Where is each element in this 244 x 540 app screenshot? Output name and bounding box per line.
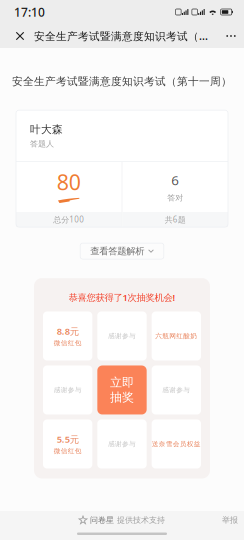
button[interactable]: 送奈雪会员权益 xyxy=(152,419,201,468)
staticText: 提供技术支持 xyxy=(117,515,165,525)
button[interactable]: 5.5元 xyxy=(43,419,92,468)
button[interactable]: 感谢参与 xyxy=(152,365,201,414)
staticText: 微信红包 xyxy=(54,339,82,347)
staticText: 抽奖 xyxy=(110,390,134,405)
staticText: 答题人 xyxy=(30,139,54,149)
button[interactable]: 感谢参与 xyxy=(97,311,147,360)
staticText: 80 xyxy=(57,168,81,196)
staticText: 安全生产考试暨满意度知识考试（第十一周） xyxy=(12,75,232,88)
staticText: 问卷星 xyxy=(90,515,114,525)
staticText: 感谢参与 xyxy=(162,386,190,394)
button[interactable]: Close xyxy=(9,24,31,48)
staticText: 微信红包 xyxy=(54,447,82,455)
staticText: 答对 xyxy=(167,193,183,203)
button[interactable]: 立即 xyxy=(97,365,147,414)
staticText: 查看答题解析 xyxy=(90,245,144,257)
button[interactable]: More xyxy=(220,24,242,48)
staticText: 安全生产考试暨满意度知识考试（第十一… xyxy=(34,29,218,43)
button[interactable]: 查看答题解析 xyxy=(80,243,164,259)
button[interactable]: 举报 xyxy=(216,511,244,529)
staticText: 共6题 xyxy=(165,214,186,225)
staticText: 六瓶网红酸奶 xyxy=(155,332,197,340)
staticText: 感谢参与 xyxy=(108,332,136,340)
staticText: 叶大森 xyxy=(30,123,63,136)
staticText: 感谢参与 xyxy=(54,386,82,394)
staticText: 8.8元 xyxy=(57,325,79,337)
staticText: 送奈雪会员权益 xyxy=(152,440,201,448)
staticText: 5.5元 xyxy=(57,433,79,445)
staticText: 感谢参与 xyxy=(108,440,136,448)
staticText: 6 xyxy=(171,171,179,189)
staticText: 举报 xyxy=(222,515,238,525)
staticText: 总分100 xyxy=(53,214,84,225)
staticText: 恭喜您获得了1次抽奖机会! xyxy=(68,291,175,303)
button[interactable]: 8.8元 xyxy=(43,311,92,360)
button[interactable]: 问卷星 xyxy=(79,511,165,529)
button[interactable]: 感谢参与 xyxy=(43,365,92,414)
button[interactable]: 六瓶网红酸奶 xyxy=(152,311,201,360)
staticText: 17:10 xyxy=(14,4,45,20)
staticText: 立即 xyxy=(110,375,134,390)
button[interactable]: 感谢参与 xyxy=(97,419,147,468)
